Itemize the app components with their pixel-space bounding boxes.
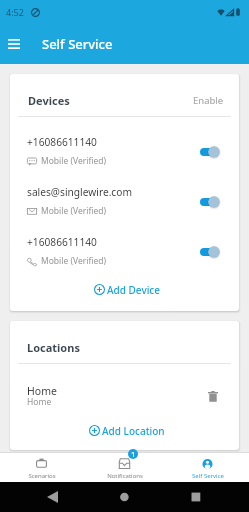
staticText: 1 <box>131 449 136 459</box>
staticText: Devices <box>28 93 70 108</box>
staticText: Notifications <box>107 472 143 480</box>
staticText: 4:52 <box>6 6 24 18</box>
button[interactable]: Home <box>10 374 239 420</box>
staticText: Mobile (Verified) <box>41 155 107 167</box>
button[interactable]: Enable <box>186 91 231 110</box>
staticText: Self Service <box>192 472 224 480</box>
button[interactable]: Delete location <box>204 388 222 406</box>
staticText: sales@singlewire.com <box>27 185 132 199</box>
button[interactable]: Toggle device <box>195 139 229 165</box>
button[interactable]: Toggle device <box>195 239 229 265</box>
button[interactable]: 1 <box>83 457 166 480</box>
button[interactable]: Add Device <box>10 277 239 311</box>
staticText: Add Location <box>102 424 165 438</box>
staticText: Mobile (Verified) <box>41 255 107 267</box>
button[interactable]: Add Location <box>10 420 239 450</box>
button[interactable]: Self Service <box>166 457 249 480</box>
staticText: Locations <box>27 340 80 355</box>
staticText: Enable <box>193 94 224 107</box>
staticText: Home <box>27 384 57 398</box>
button[interactable]: +16086611140 <box>10 227 239 277</box>
button[interactable]: sales@singlewire.com <box>10 177 239 227</box>
staticText: Home <box>27 396 52 408</box>
staticText: Add Device <box>107 283 161 297</box>
staticText: Scenarios <box>28 472 56 480</box>
staticText: +16086611140 <box>27 135 97 149</box>
button[interactable]: Scenarios <box>0 457 83 480</box>
staticText: Self Service <box>42 35 113 53</box>
button[interactable]: +16086611140 <box>10 127 239 177</box>
button[interactable]: Toggle device <box>195 189 229 215</box>
staticText: Mobile (Verified) <box>41 205 107 217</box>
button[interactable]: Open navigation menu <box>1 31 27 57</box>
staticText: +16086611140 <box>27 235 97 249</box>
